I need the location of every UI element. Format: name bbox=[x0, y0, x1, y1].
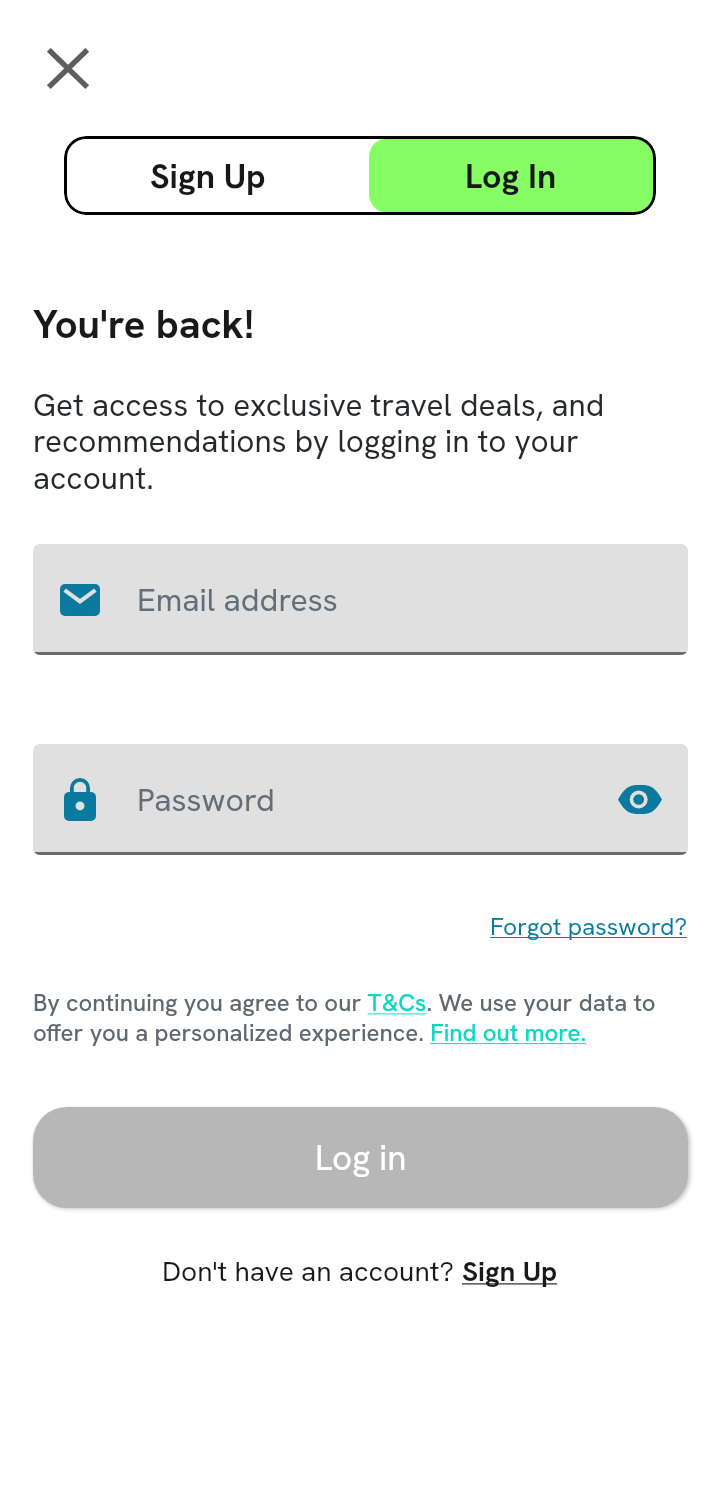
staticText: Sign Up bbox=[462, 1253, 558, 1289]
staticText: Sign Up bbox=[150, 154, 266, 198]
staticText: Log in bbox=[315, 1135, 407, 1181]
staticText: Log In bbox=[465, 154, 557, 198]
button[interactable]: Email address bbox=[33, 544, 688, 655]
staticText: Don't have an account? bbox=[162, 1253, 462, 1289]
staticText: Forgot password? bbox=[490, 910, 688, 942]
staticText: Password bbox=[137, 779, 275, 821]
staticText: You're back! bbox=[33, 298, 255, 350]
staticText: Email address bbox=[137, 579, 338, 621]
staticText: Get access to exclusive travel deals, an… bbox=[33, 384, 687, 499]
button[interactable]: Sign Up bbox=[64, 136, 369, 215]
button[interactable]: Log in bbox=[33, 1107, 688, 1208]
button[interactable]: Close bbox=[44, 44, 92, 92]
button[interactable]: Sign Up bbox=[462, 1253, 558, 1289]
staticText: By continuing you agree to our T&Cs. We … bbox=[33, 987, 688, 1048]
button[interactable]: Forgot password? bbox=[490, 910, 688, 942]
button[interactable]: Show password bbox=[618, 785, 662, 814]
button[interactable]: Password bbox=[33, 744, 688, 855]
button[interactable]: Log In bbox=[369, 138, 653, 213]
